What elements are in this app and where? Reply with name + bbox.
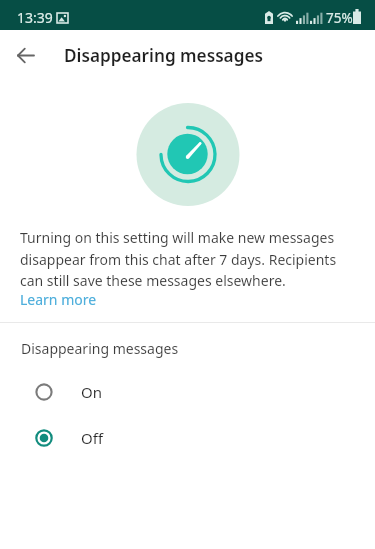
staticText: Disappearing messages — [21, 339, 179, 358]
staticText: 75% — [326, 9, 353, 27]
button[interactable]: Back — [8, 38, 42, 72]
staticText: Turning on this setting will make new me… — [20, 228, 352, 290]
staticText: Disappearing messages — [64, 44, 263, 67]
button[interactable]: Learn more — [20, 290, 97, 309]
button[interactable]: Off — [0, 415, 375, 461]
staticText: Off — [81, 428, 104, 448]
staticText: On — [81, 382, 102, 402]
button[interactable]: On — [0, 369, 375, 415]
staticText: 13:39 — [17, 8, 53, 27]
staticText: Learn more — [20, 290, 97, 309]
